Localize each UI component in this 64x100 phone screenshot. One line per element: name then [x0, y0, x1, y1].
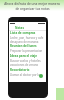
staticText: desayuno de manana — [10, 40, 39, 44]
staticText: Ahora disfruta de una mejor manera — [4, 2, 60, 6]
staticText: Buscar vuelos y hoteles para las — [10, 59, 45, 63]
button[interactable]: Ideas para el viaje — [9, 54, 46, 68]
staticText: Leche, pan, huevos y cafe para el — [10, 36, 45, 40]
button[interactable]: Add note — [39, 74, 43, 78]
staticText: Reunion del lunes — [10, 44, 37, 48]
staticText: Llamar al doctor por la manana — [10, 73, 45, 77]
button[interactable]: Menu — [9, 25, 46, 31]
staticText: Notas — [15, 26, 24, 30]
staticText: Ideas para el viaje — [10, 54, 38, 58]
staticText: vacaciones de verano — [10, 63, 39, 67]
staticText: de organizar tus notas — [15, 7, 50, 11]
staticText: Lista de compras — [10, 31, 36, 35]
staticText: Preparar la presentacion final — [10, 49, 45, 53]
staticText: Recordatorio — [10, 68, 30, 72]
button[interactable]: Recordatorio — [9, 68, 46, 78]
button[interactable]: Lista de compras — [9, 31, 46, 44]
button[interactable]: Reunion del lunes — [9, 44, 46, 55]
